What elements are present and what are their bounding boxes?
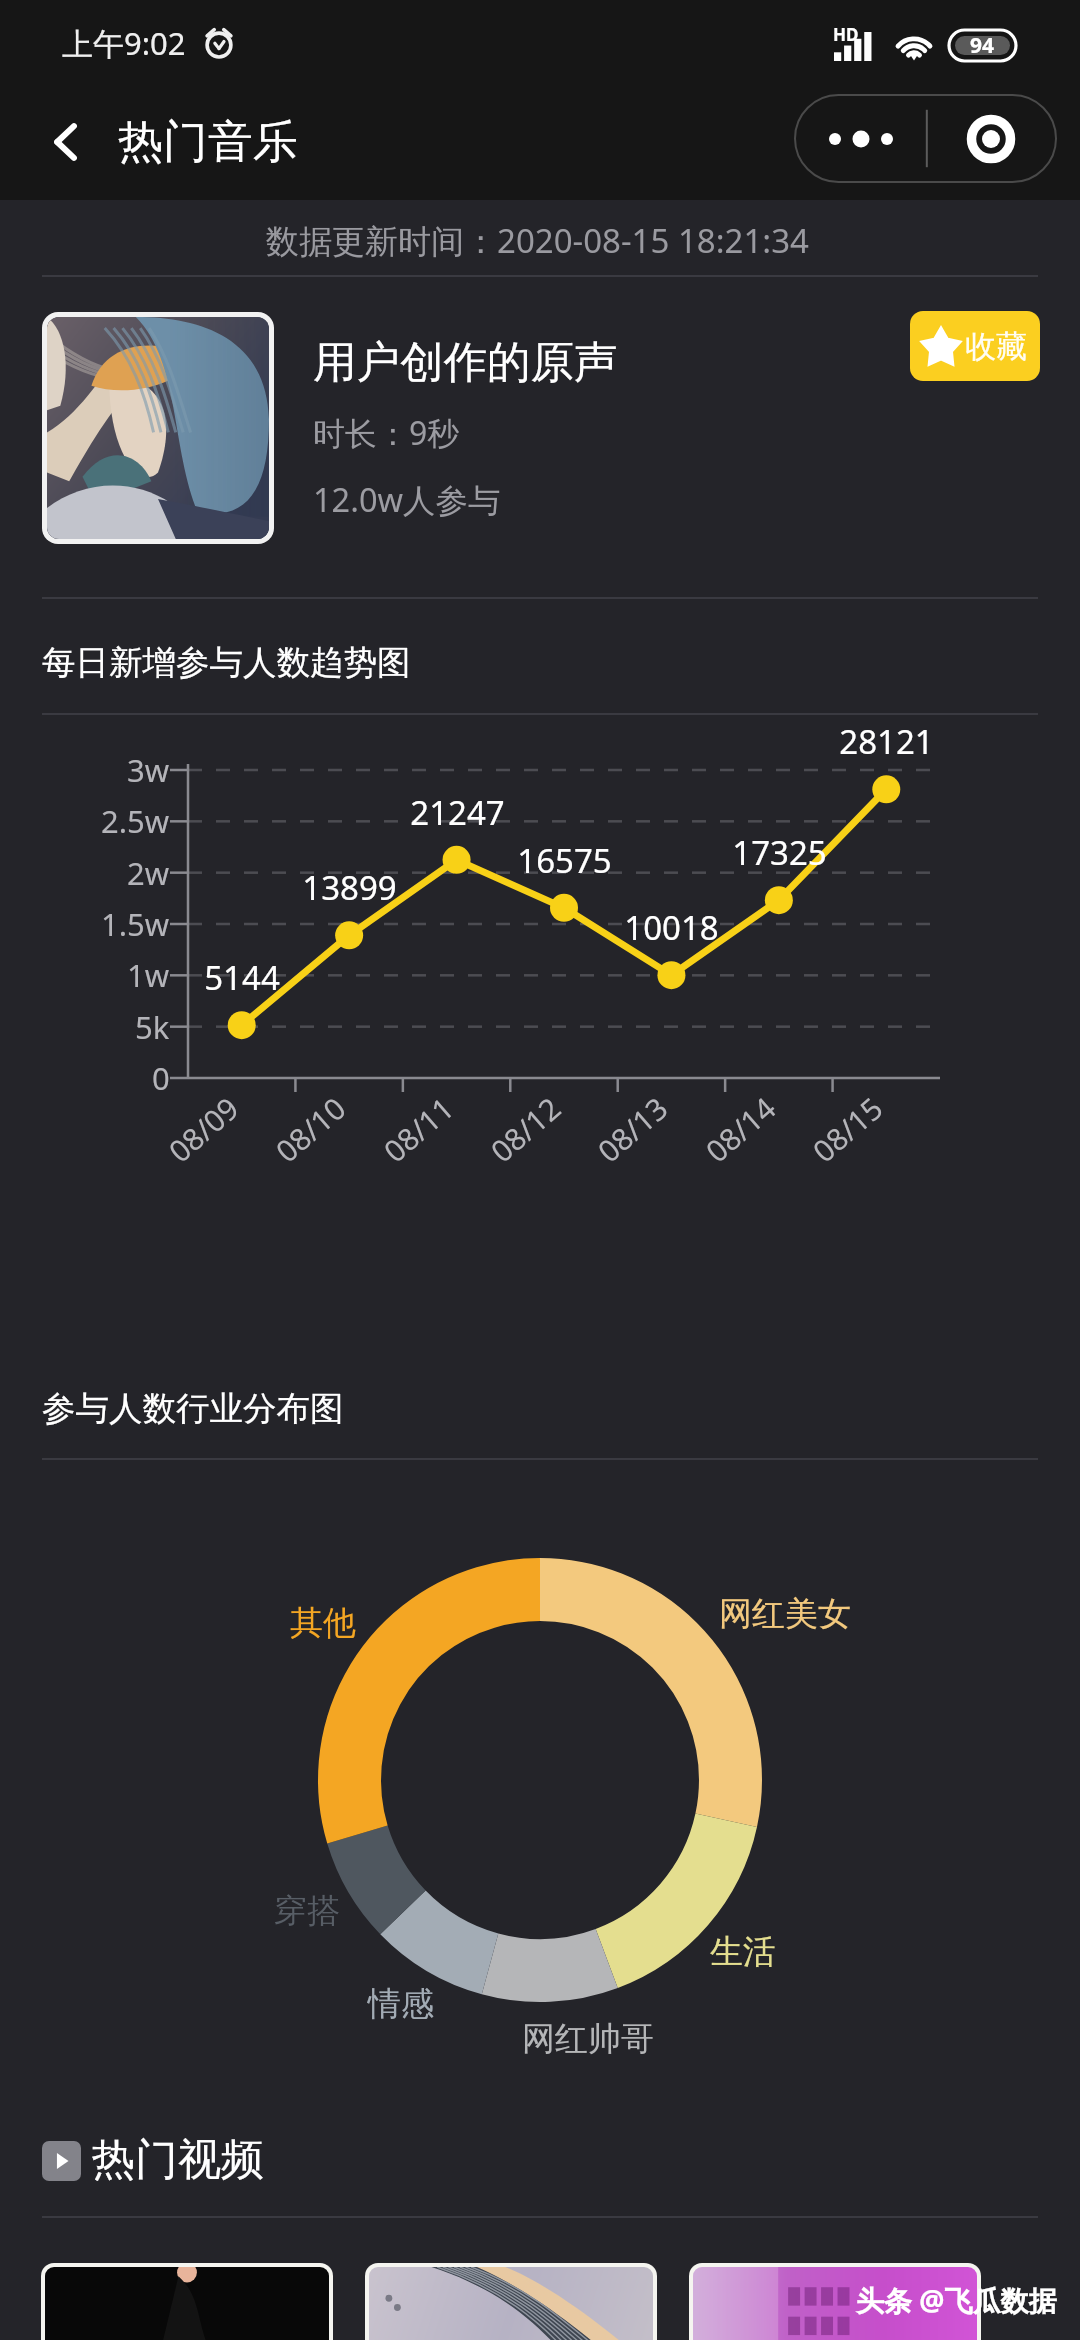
button[interactable]: More [795,95,926,182]
staticText: 10018 [624,905,719,950]
staticText: 16575 [517,838,612,883]
staticText: 网红帅哥 [522,2018,654,2060]
button[interactable]: Back [24,100,108,184]
staticText: 28121 [839,719,934,764]
staticText: 3w [127,749,170,791]
staticText: 上午9:02 [62,22,186,64]
staticText: 其他 [290,1602,356,1644]
staticText: 1.5w [101,903,170,945]
staticText: 13899 [302,865,397,910]
button[interactable]: 收藏 [910,311,1040,381]
staticText: 2w [127,852,170,894]
staticText: HD [833,23,859,46]
staticText: 网红美女 [719,1593,851,1635]
staticText: 08/13 [589,1088,676,1171]
staticText: 用户创作的原声 [313,335,618,390]
staticText: 收藏 [965,327,1027,366]
staticText: 热门视频 [92,2133,264,2187]
button[interactable] [36,2130,276,2192]
staticText: 1w [127,954,170,996]
staticText: 2.5w [101,800,170,842]
staticText: 情感 [368,1983,434,2025]
staticText: 08/15 [804,1088,891,1171]
staticText: 生活 [710,1931,776,1973]
staticText: 每日新增参与人数趋势图 [42,642,411,684]
staticText: 5144 [204,955,280,1000]
staticText: 穿搭 [274,1890,340,1932]
button[interactable]: Close mini program [926,95,1056,182]
button[interactable] [693,2267,977,2340]
staticText: 08/14 [697,1088,784,1171]
staticText: 热门音乐 [118,114,298,171]
staticText: 头条 @飞瓜数据 [856,2281,1057,2319]
staticText: 12.0w人参与 [313,477,501,521]
staticText: 数据更新时间：2020-08-15 18:21:34 [266,218,809,263]
staticText: 21247 [410,790,505,835]
button[interactable] [45,2267,329,2340]
button[interactable] [0,290,1080,580]
staticText: 0 [152,1057,170,1099]
staticText: 5k [135,1006,170,1048]
staticText: 94 [970,31,995,60]
button[interactable] [369,2267,653,2340]
staticText: 参与人数行业分布图 [42,1388,344,1430]
staticText: 17325 [732,830,827,875]
staticText: 08/12 [482,1088,569,1171]
staticText: 08/11 [375,1088,462,1171]
staticText: 08/09 [160,1088,247,1171]
staticText: 08/10 [267,1088,354,1171]
staticText: 时长：9秒 [313,411,460,455]
